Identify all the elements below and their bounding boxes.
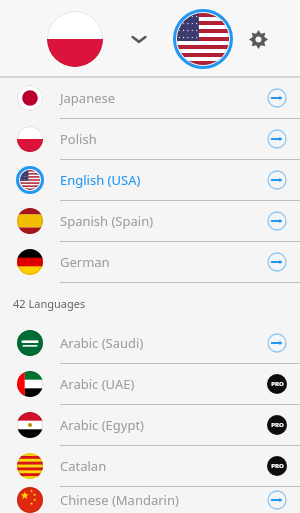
staticText: Chinese (Mandarin)	[60, 491, 254, 509]
staticText: PRO	[271, 380, 284, 388]
button[interactable]: Pro feature	[265, 413, 289, 437]
staticText: German	[60, 253, 254, 271]
button[interactable]: Arabic (UAE)	[0, 364, 300, 404]
button[interactable]: Settings	[241, 22, 275, 56]
button[interactable]: Pro feature	[265, 454, 289, 478]
button[interactable]: English (USA)	[0, 160, 300, 200]
button[interactable]: Download	[265, 209, 289, 233]
staticText: English (USA)	[60, 171, 254, 189]
button[interactable]: Download	[265, 168, 289, 192]
staticText: Arabic (Saudi)	[60, 334, 254, 352]
staticText: PRO	[271, 421, 284, 429]
button[interactable]: Catalan	[0, 446, 300, 486]
staticText: PRO	[271, 462, 284, 470]
staticText: 42 Languages	[13, 296, 86, 311]
button[interactable]: Arabic (Egypt)	[0, 405, 300, 445]
button[interactable]: Arabic (Saudi)	[0, 323, 300, 363]
button[interactable]: Spanish (Spain)	[0, 201, 300, 241]
button[interactable]: Expand	[122, 22, 156, 56]
staticText: Arabic (UAE)	[60, 375, 254, 393]
staticText: Spanish (Spain)	[60, 212, 254, 230]
button[interactable]: Download	[265, 488, 289, 512]
button[interactable]: Polish	[0, 119, 300, 159]
button[interactable]: Download	[265, 127, 289, 151]
staticText: Catalan	[60, 457, 254, 475]
staticText: Arabic (Egypt)	[60, 416, 254, 434]
button[interactable]: Download	[265, 86, 289, 110]
button[interactable]: Chinese (Mandarin)	[0, 487, 300, 513]
button[interactable]: Pro feature	[265, 372, 289, 396]
staticText: Polish	[60, 130, 254, 148]
button[interactable]: Japanese	[0, 78, 300, 118]
button[interactable]: Download	[265, 250, 289, 274]
button[interactable]: Target language English USA	[173, 9, 233, 69]
button[interactable]: Source language Polish	[47, 11, 103, 67]
button[interactable]: German	[0, 242, 300, 282]
staticText: Japanese	[60, 89, 254, 107]
button[interactable]: Download	[265, 331, 289, 355]
